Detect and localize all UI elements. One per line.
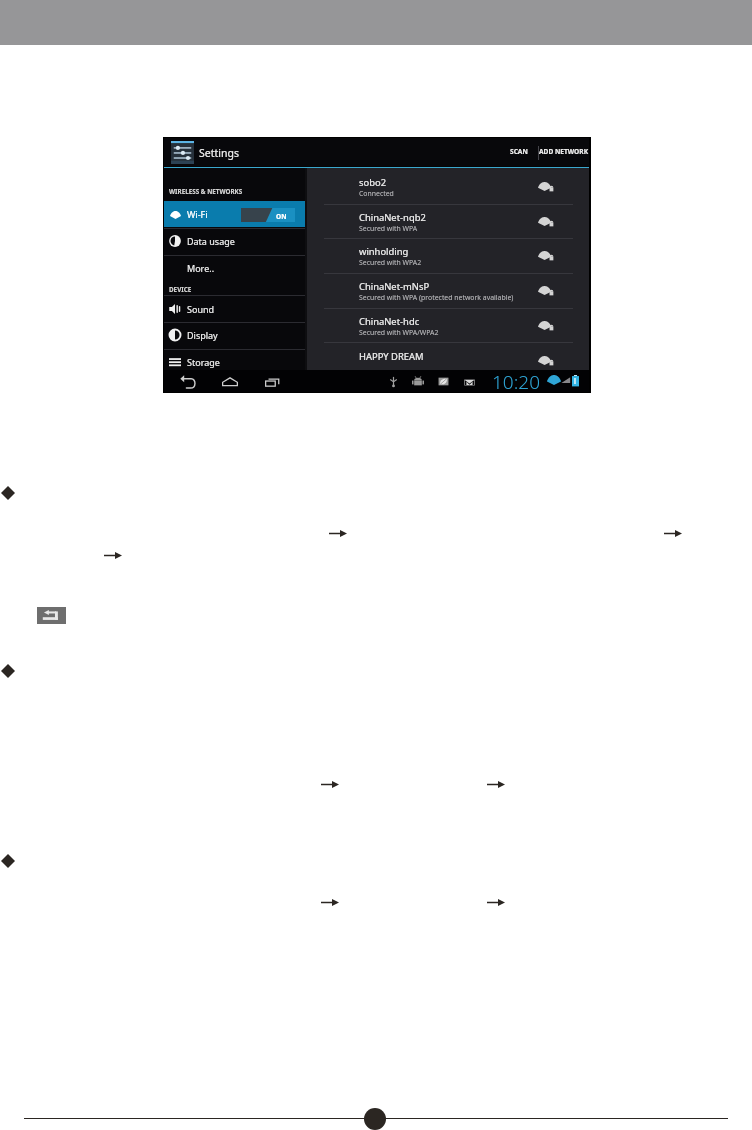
staticText: Display (187, 329, 218, 341)
staticText: Storage (187, 356, 220, 368)
button[interactable]: Back (177, 371, 198, 392)
button[interactable]: Home (219, 371, 240, 392)
button[interactable]: ChinaNet-hdc (307, 307, 590, 341)
button[interactable]: Return (37, 607, 66, 624)
staticText: ON (276, 212, 287, 221)
staticText: WIRELESS & NETWORKS (169, 187, 243, 196)
staticText: Secured with WPA (359, 224, 418, 233)
button[interactable]: Recents (262, 371, 283, 392)
staticText: Secured with WPA2 (359, 258, 422, 267)
staticText: winholding (359, 245, 409, 258)
button[interactable]: sobo2 (307, 168, 590, 202)
staticText: Wi-Fi (187, 208, 208, 220)
staticText: Secured with WPA/WPA2 (359, 328, 439, 337)
button[interactable]: Sound (163, 296, 305, 322)
button[interactable]: Display (163, 322, 305, 348)
staticText: HAPPY DREAM (359, 350, 424, 363)
staticText: Connected (359, 189, 394, 198)
button[interactable]: Data usage (163, 228, 305, 256)
staticText: More.. (187, 262, 215, 274)
button[interactable]: winholding (307, 237, 590, 271)
button[interactable]: SCAN (501, 143, 537, 160)
staticText: Data usage (187, 235, 235, 247)
staticText: sobo2 (359, 176, 387, 189)
button[interactable]: ADD NETWORK (538, 143, 590, 160)
staticText: ChinaNet-nqb2 (359, 211, 426, 224)
button[interactable]: Wi-Fi (163, 201, 305, 227)
staticText: ADD NETWORK (539, 147, 589, 156)
staticText: Sound (187, 303, 215, 315)
staticText: 10:20 (492, 369, 541, 392)
staticText: ChinaNet-hdc (359, 315, 420, 328)
staticText: ChinaNet-mNsP (359, 280, 430, 293)
staticText: Secured with WPA (protected network avai… (359, 293, 514, 302)
staticText: SCAN (510, 147, 528, 156)
button[interactable]: More.. (163, 255, 305, 281)
staticText: Settings (199, 146, 239, 160)
button[interactable]: Storage (163, 349, 305, 370)
button[interactable]: ChinaNet-mNsP (307, 272, 590, 306)
button[interactable]: ChinaNet-nqb2 (307, 203, 590, 237)
button[interactable]: HAPPY DREAM (307, 342, 590, 376)
staticText: DEVICE (169, 285, 192, 294)
